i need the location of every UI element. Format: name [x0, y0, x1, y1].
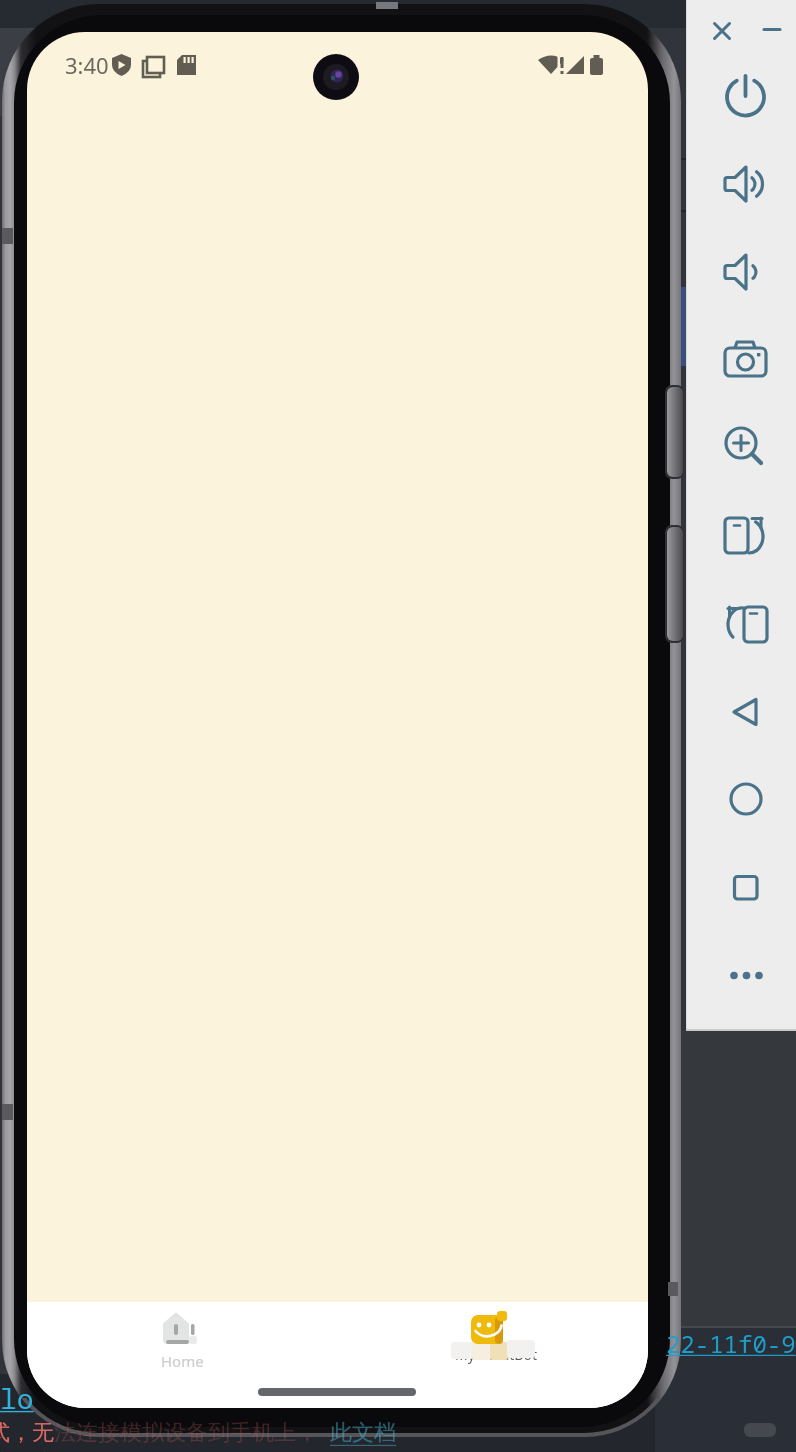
button[interactable]: Home	[150, 1306, 212, 1372]
staticText: Home	[161, 1351, 204, 1371]
button[interactable]	[717, 333, 774, 390]
button[interactable]	[718, 771, 775, 828]
button[interactable]	[717, 684, 774, 741]
button[interactable]	[717, 69, 774, 126]
button[interactable]	[717, 947, 774, 1004]
button[interactable]	[754, 13, 790, 49]
staticText: lo	[0, 1379, 34, 1417]
button[interactable]	[717, 860, 774, 917]
staticText: 此文档	[330, 1419, 396, 1447]
button[interactable]	[713, 420, 770, 477]
staticText: 式，无法连接模拟设备到手机上，	[0, 1419, 66, 1452]
staticText: 22-11f0-9	[666, 1327, 796, 1360]
button[interactable]	[717, 244, 774, 301]
button[interactable]: My iFloatBot	[445, 1306, 545, 1372]
staticText: 式，无法连接模拟设备到手机上，	[0, 1419, 318, 1447]
button[interactable]	[715, 508, 772, 565]
button[interactable]	[704, 13, 740, 49]
button[interactable]	[717, 156, 774, 213]
staticText: 3:40	[65, 50, 109, 80]
button[interactable]	[258, 1388, 416, 1396]
staticText: My iFloatBot	[455, 1345, 537, 1364]
button[interactable]	[715, 596, 772, 653]
